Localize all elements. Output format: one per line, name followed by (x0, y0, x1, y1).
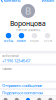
button[interactable]: вызов (15, 33, 28, 43)
staticText: Воронцова (10, 19, 46, 28)
staticText: Заметки (2, 67, 12, 71)
button[interactable]: Отправить сообщение (0, 83, 56, 88)
button[interactable]: Измен. (40, 0, 56, 3)
staticText: вызов (17, 39, 26, 43)
staticText: главный редактор (15, 28, 40, 31)
button[interactable]: Поделиться контактом (0, 90, 56, 95)
staticText: мобильный (2, 54, 19, 58)
button[interactable]: Недавние (11, 95, 22, 100)
staticText: Поделиться контактом (2, 90, 43, 95)
staticText: Измен. (41, 0, 54, 3)
staticText: видео (30, 39, 39, 43)
staticText: сообщ. (3, 39, 13, 43)
staticText: почта (43, 39, 51, 43)
button[interactable]: Контакты (0, 0, 21, 3)
button[interactable]: мобильный (0, 54, 56, 64)
staticText: В (25, 5, 31, 17)
button[interactable]: Автоотв. (45, 95, 56, 100)
button[interactable]: Контакты (22, 95, 34, 100)
button[interactable]: сообщ. (2, 33, 15, 43)
staticText: +7 916 123-45-67 (2, 58, 30, 63)
staticText: Контакты (3, 0, 20, 3)
staticText: Отправить сообщение (2, 83, 42, 88)
button[interactable]: Избранное (0, 95, 11, 100)
button[interactable]: Клавиши (34, 95, 45, 100)
button[interactable]: видео (28, 33, 41, 43)
button[interactable]: почта (41, 33, 54, 43)
